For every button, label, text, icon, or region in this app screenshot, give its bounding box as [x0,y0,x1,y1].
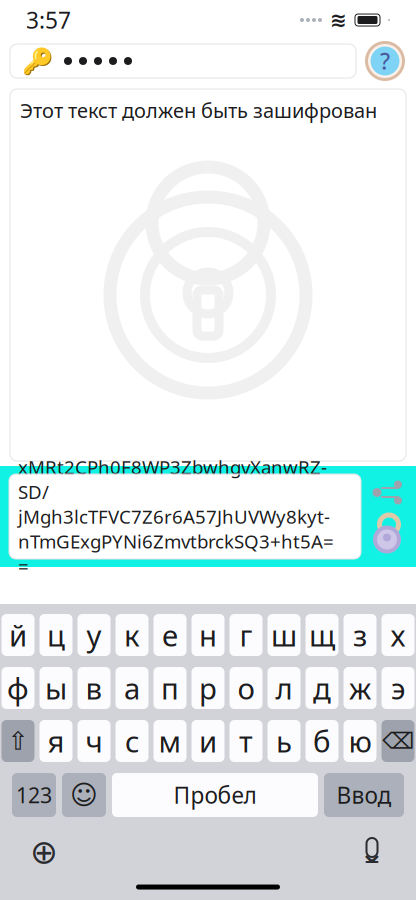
staticText: а [124,668,140,707]
button[interactable]: р [191,667,224,709]
button[interactable]: Decrypt [369,511,405,555]
staticText: Ввод [336,780,391,810]
staticText: н [199,615,217,654]
button[interactable]: п [153,667,186,709]
staticText: 123 [16,781,52,809]
button[interactable]: ц [39,614,72,656]
button[interactable]: с [115,720,148,762]
button[interactable]: ш [267,614,300,656]
button[interactable]: е [153,614,186,656]
staticText: 3:57 [26,5,71,35]
button[interactable]: я [39,720,72,762]
staticText: и [199,721,217,760]
button[interactable]: Dictate [350,830,394,874]
button[interactable]: в [77,667,110,709]
button[interactable]: Ввод [324,773,404,817]
button[interactable]: а [115,667,148,709]
staticText: к [124,615,140,654]
button[interactable]: и [191,720,224,762]
button[interactable]: ч [77,720,110,762]
staticText: з [353,615,367,654]
button[interactable]: у [77,614,110,656]
staticText: т [239,721,253,760]
button[interactable]: ю [343,720,376,762]
button[interactable]: ⇧ [1,720,34,762]
button[interactable]: 123 [12,773,56,817]
staticText: xMRt2CPh0F8WP3ZbwhgvXanwRZSD/jMgh3lcTFVC… [18,454,334,578]
staticText: м [158,721,181,760]
button[interactable]: ж [343,667,376,709]
button[interactable]: ⌫ [381,720,414,762]
button[interactable]: к [115,614,148,656]
staticText: ш [271,615,297,654]
staticText: ⊕ [30,833,58,871]
button[interactable]: м [153,720,186,762]
staticText: щ [309,615,335,654]
button[interactable]: щ [305,614,338,656]
button[interactable]: г [229,614,262,656]
button[interactable]: ☺ [62,773,106,817]
staticText: е [162,615,178,654]
button[interactable]: ф [1,667,34,709]
button[interactable]: л [267,667,300,709]
staticText: я [47,721,64,760]
staticText: ⌫ [382,728,414,754]
staticText: в [85,668,102,707]
staticText: ы [45,668,67,707]
staticText: ⇧ [7,727,28,755]
staticText: л [275,668,292,707]
button[interactable]: д [305,667,338,709]
staticText: о [237,668,254,707]
button[interactable]: ь [267,720,300,762]
button[interactable]: о [229,667,262,709]
button[interactable]: т [229,720,262,762]
staticText: ☺ [70,780,98,810]
staticText: 🔑 [22,46,54,75]
staticText: р [199,668,217,707]
staticText: ? [380,46,390,76]
staticText: ф [7,668,29,707]
staticText: ь [276,721,292,760]
staticText: й [9,615,27,654]
staticText: ж [349,668,371,707]
staticText: ⌄ [358,834,385,870]
staticText: ч [85,721,102,760]
button[interactable]: н [191,614,224,656]
staticText: б [313,721,331,760]
staticText: э [391,668,405,707]
staticText: п [161,668,179,707]
button[interactable]: й [1,614,34,656]
staticText: ю [348,721,371,760]
button[interactable]: Share [372,477,402,507]
button[interactable]: ы [39,667,72,709]
staticText: д [313,668,331,707]
staticText: у [86,615,101,654]
staticText: ≋ [330,9,347,31]
button[interactable]: з [343,614,376,656]
button[interactable]: Help [364,40,406,82]
staticText: ц [47,615,65,654]
button[interactable]: Change keyboard [22,830,66,874]
staticText: с [125,721,139,760]
staticText: Этот текст должен быть зашифрован [20,97,377,124]
button[interactable]: э [381,667,414,709]
button[interactable]: б [305,720,338,762]
button[interactable]: Пробел [112,773,318,817]
staticText: х [390,615,405,654]
staticText: Пробел [173,780,256,810]
staticText: г [239,615,252,654]
button[interactable]: х [381,614,414,656]
